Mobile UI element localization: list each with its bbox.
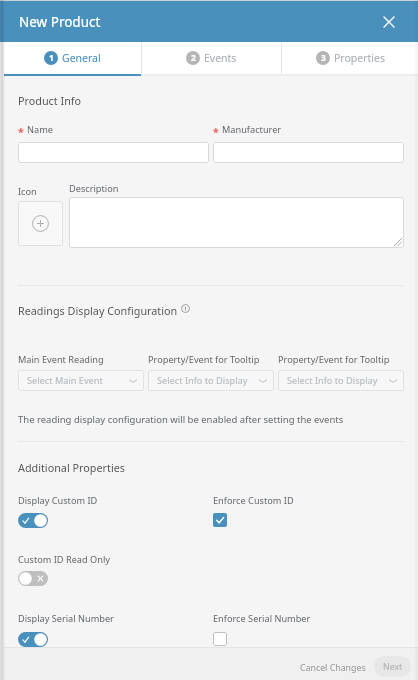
button[interactable] (18, 142, 209, 163)
staticText: Property/Event for Tooltip (148, 353, 274, 366)
staticText: * (213, 125, 219, 139)
staticText: Icon (18, 185, 37, 198)
staticText: * (18, 125, 24, 139)
staticText: Display Serial Number (18, 612, 114, 625)
staticText: Property/Event for Tooltip (278, 353, 404, 366)
button[interactable]: Select Info to Display (278, 370, 404, 391)
staticText: Enforce Serial Number (213, 612, 311, 625)
staticText: Select Info to Display (157, 374, 248, 387)
button[interactable]: Select Info to Display (148, 370, 274, 391)
button[interactable]: Toggle on (18, 513, 48, 528)
button[interactable]: Cancel Changes (294, 657, 372, 678)
button[interactable]: Add icon (18, 201, 63, 246)
staticText: Manufacturer (222, 123, 282, 136)
staticText: Product Info (18, 93, 82, 108)
staticText: Properties (334, 51, 385, 65)
staticText: New Product (19, 13, 101, 31)
staticText: 2 (191, 52, 196, 64)
staticText: Main Event Reading (18, 353, 144, 366)
button[interactable]: 1 (4, 42, 141, 76)
staticText: Enforce Custom ID (213, 494, 294, 507)
staticText: The reading display configuration will b… (18, 413, 344, 426)
staticText: 3 (321, 52, 326, 64)
staticText: Display Custom ID (18, 494, 98, 507)
staticText: General (62, 51, 101, 65)
staticText: Readings Display Configuration (18, 303, 178, 318)
button[interactable]: Select Main Event (18, 370, 144, 391)
button[interactable]: Checkbox (213, 632, 227, 646)
button[interactable] (213, 142, 404, 163)
staticText: Cancel Changes (300, 662, 366, 674)
staticText: 1 (49, 52, 54, 64)
staticText: Name (27, 123, 53, 136)
staticText: Select Main Event (27, 374, 103, 387)
button[interactable]: Toggle off (18, 571, 48, 586)
button[interactable]: 2 (142, 42, 281, 76)
button[interactable] (69, 197, 404, 248)
staticText: Next (383, 661, 403, 673)
staticText: Description (69, 182, 119, 195)
button[interactable]: Next (374, 656, 411, 677)
button[interactable]: 3 (282, 42, 418, 76)
button[interactable]: Checkbox (213, 513, 227, 527)
staticText: Select Info to Display (287, 374, 378, 387)
button[interactable]: Close (379, 12, 399, 32)
button[interactable]: Toggle on (18, 632, 48, 647)
staticText: Additional Properties (18, 460, 125, 475)
staticText: Events (204, 51, 237, 65)
staticText: Custom ID Read Only (18, 553, 110, 566)
